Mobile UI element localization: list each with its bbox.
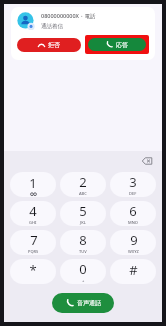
- staticText: *: [29, 261, 37, 279]
- staticText: WXYZ: [128, 249, 139, 254]
- staticText: 1: [29, 174, 37, 192]
- staticText: 応答: [116, 41, 128, 49]
- button[interactable]: 8: [60, 230, 106, 255]
- button[interactable]: 応答: [88, 38, 146, 51]
- staticText: 3: [129, 173, 137, 191]
- button[interactable]: 5: [60, 201, 106, 226]
- staticText: ABC: [79, 191, 87, 196]
- staticText: GHI: [29, 220, 37, 225]
- button[interactable]: 0: [60, 259, 106, 284]
- staticText: DEF: [129, 191, 137, 196]
- button[interactable]: 9: [110, 230, 156, 255]
- button[interactable]: 音声通話: [52, 293, 114, 313]
- button[interactable]: #: [110, 259, 156, 284]
- button[interactable]: 3: [110, 172, 156, 197]
- staticText: 2: [79, 173, 87, 191]
- button[interactable]: 4: [10, 201, 56, 226]
- staticText: 7: [30, 231, 38, 249]
- staticText: 0: [79, 260, 87, 278]
- staticText: 音声通話: [77, 299, 101, 307]
- staticText: 5: [79, 202, 87, 220]
- staticText: MNO: [128, 220, 138, 225]
- staticText: 08000000000X・電話: [41, 12, 96, 20]
- button[interactable]: 6: [110, 201, 156, 226]
- staticText: 8: [79, 231, 87, 249]
- button[interactable]: 2: [60, 172, 106, 197]
- staticText: JKL: [80, 220, 86, 225]
- staticText: #: [129, 261, 138, 279]
- staticText: 通話着信: [41, 23, 63, 30]
- staticText: 4: [29, 202, 37, 220]
- staticText: 6: [129, 202, 137, 220]
- staticText: 9: [130, 231, 138, 249]
- staticText: TUV: [79, 249, 87, 254]
- staticText: PQRS: [28, 249, 39, 254]
- button[interactable]: 7: [10, 230, 56, 255]
- staticText: +: [82, 278, 85, 283]
- button[interactable]: 1: [10, 172, 56, 197]
- staticText: 拒否: [48, 41, 60, 49]
- button[interactable]: 拒否: [17, 38, 81, 52]
- button[interactable]: Backspace: [140, 154, 153, 167]
- button[interactable]: *: [10, 259, 56, 284]
